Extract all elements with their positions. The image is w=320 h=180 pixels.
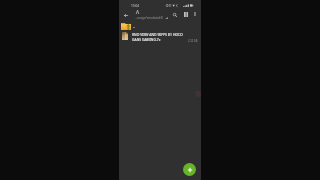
staticText: .. [133,24,135,29]
button[interactable]: More options [191,10,199,18]
button[interactable]: Search [170,10,179,19]
button[interactable]: .. [119,21,201,30]
button[interactable]: Change view [181,10,190,19]
staticText: 2.22 GB [188,39,198,43]
button[interactable]: Add [183,163,196,176]
button[interactable]: …orage/emulated/0 [135,9,170,20]
staticText: GANS GAMING.7z [132,37,161,42]
staticText: …orage/emulated/0 [135,16,163,20]
staticText: 10:04 [131,4,140,8]
button[interactable]: RNO VIEW AND 90FPS B1 HOCO [119,30,201,42]
button[interactable]: Navigate up [121,10,131,20]
staticText: RNO VIEW AND 90FPS B1 HOCO [132,32,183,37]
